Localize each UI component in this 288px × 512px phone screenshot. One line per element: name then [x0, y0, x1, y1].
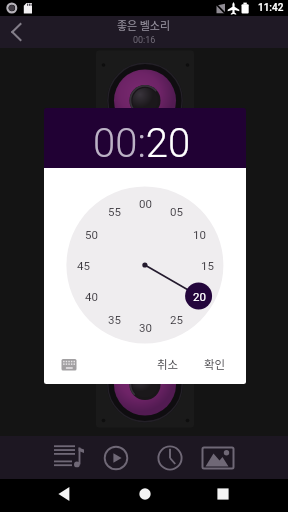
button[interactable]: 55 — [103, 203, 125, 219]
button[interactable] — [123, 479, 166, 512]
staticText: 좋은 벨소리 — [117, 17, 171, 33]
button[interactable] — [0, 16, 32, 48]
button[interactable]: 50 — [80, 226, 102, 242]
button[interactable]: 05 — [165, 203, 187, 219]
button[interactable]: 30 — [134, 319, 156, 335]
staticText: 00:16 — [133, 35, 156, 46]
staticText: 10 — [193, 228, 206, 241]
button[interactable]: 35 — [103, 311, 125, 327]
button[interactable]: 40 — [80, 288, 102, 304]
button[interactable] — [94, 436, 138, 479]
button[interactable]: 15 — [196, 257, 218, 273]
staticText: 45 — [77, 259, 90, 272]
staticText: 35 — [108, 313, 121, 326]
button[interactable]: 확인 — [195, 351, 235, 377]
button[interactable] — [148, 436, 192, 479]
staticText: 00 — [139, 197, 152, 210]
staticText: 확인 — [204, 356, 226, 373]
button[interactable]: 45 — [72, 257, 94, 273]
button[interactable] — [48, 436, 92, 479]
staticText: 11:42 — [258, 2, 284, 14]
staticText: 취소 — [157, 356, 179, 373]
button[interactable]: 취소 — [148, 351, 188, 377]
button[interactable] — [196, 436, 240, 479]
staticText: 55 — [108, 205, 121, 218]
staticText: 40 — [85, 290, 98, 303]
staticText: 50 — [85, 228, 98, 241]
staticText: 20 — [193, 290, 206, 303]
button[interactable] — [42, 479, 85, 512]
button[interactable]: 00 — [134, 195, 156, 211]
staticText: 00:20 — [93, 120, 191, 167]
staticText: 15 — [201, 259, 214, 272]
staticText: 05 — [170, 205, 183, 218]
button[interactable]: 10 — [188, 226, 210, 242]
button[interactable] — [201, 479, 244, 512]
staticText: 25 — [170, 313, 183, 326]
staticText: 30 — [139, 321, 152, 334]
button[interactable] — [56, 353, 82, 377]
button[interactable]: 25 — [165, 311, 187, 327]
button[interactable]: 20 — [188, 288, 210, 304]
